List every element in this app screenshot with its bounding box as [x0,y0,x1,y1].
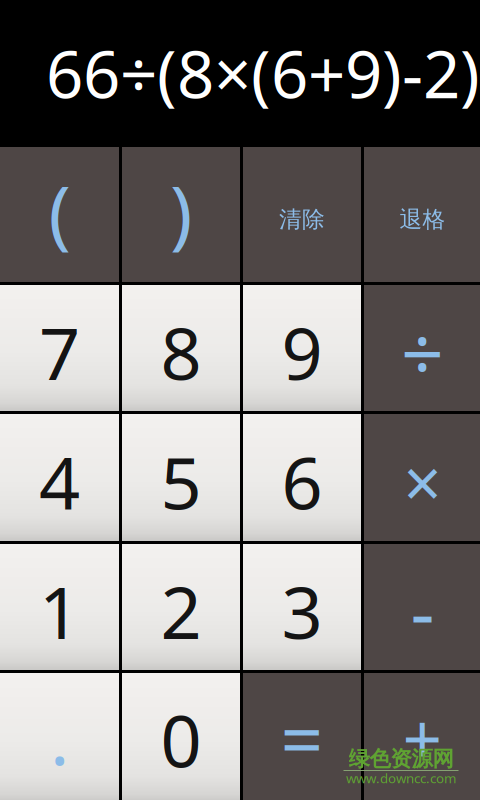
button[interactable]: 2 [122,544,240,670]
staticText: + [402,691,442,784]
staticText: = [280,688,323,787]
button[interactable]: 清除 [243,147,361,282]
staticText: 清除 [279,206,325,233]
button[interactable]: 5 [122,414,240,541]
button[interactable]: = [243,673,361,800]
staticText: 7 [39,304,80,400]
staticText: ) [170,162,192,261]
button[interactable]: ÷ [364,285,480,411]
staticText: 绿色资源网 [348,746,453,772]
staticText: - [410,561,434,660]
staticText: × [403,438,441,526]
button[interactable]: × [364,414,480,541]
button[interactable]: ( [0,147,119,282]
staticText: 2 [160,563,201,659]
staticText: 0 [160,692,201,787]
staticText: 3 [281,563,322,659]
staticText: 66÷(8×(6+9)-2) [46,30,480,116]
staticText: 退格 [399,206,445,233]
button[interactable]: 7 [0,285,119,411]
staticText: . [50,690,69,785]
staticText: 4 [39,434,80,529]
staticText: ÷ [401,302,444,402]
button[interactable]: ) [122,147,240,282]
button[interactable]: - [364,544,480,670]
staticText: 1 [39,563,80,659]
button[interactable]: 4 [0,414,119,541]
button[interactable]: 1 [0,544,119,670]
staticText: 6 [281,434,322,529]
button[interactable]: 退格 [364,147,480,282]
staticText: ( [48,162,70,261]
button[interactable]: 6 [243,414,361,541]
button[interactable]: 9 [243,285,361,411]
button[interactable]: 8 [122,285,240,411]
staticText: 8 [160,304,201,400]
button[interactable]: 3 [243,544,361,670]
staticText: 9 [281,304,322,400]
button[interactable]: 0 [122,673,240,800]
button[interactable]: + [364,673,480,800]
button[interactable]: . [0,673,119,800]
staticText: www.downcc.com [346,769,456,787]
staticText: 5 [160,434,201,529]
